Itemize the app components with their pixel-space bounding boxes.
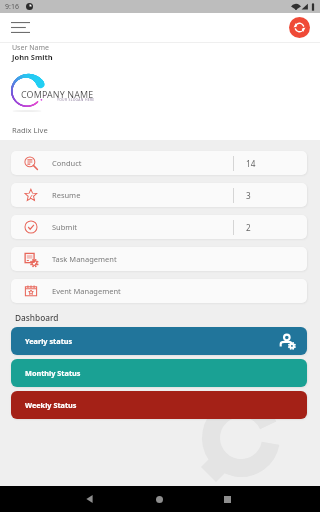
staticText: John Smith [12,52,53,62]
button[interactable]: Event Management [11,279,307,303]
button[interactable]: Refresh [289,17,310,38]
button[interactable]: Back [74,486,104,512]
button[interactable]: Yearly status [11,327,307,355]
button[interactable]: Task Management [11,247,307,271]
staticText: 9:16 [5,2,19,12]
staticText: Event Management [52,286,121,296]
staticText: Resume [52,190,81,200]
button[interactable]: Submit [11,215,307,239]
staticText: COMPANY NAME [21,88,94,100]
staticText: Weekly Status [25,400,77,410]
button[interactable]: Conduct [11,151,307,175]
staticText: Yearly status [25,336,73,346]
staticText: 3 [246,190,251,201]
button[interactable]: Recents [212,486,242,512]
staticText: YOUR SLOGAN HERE [57,97,95,102]
button[interactable]: Menu [5,16,35,38]
button[interactable]: Resume [11,183,307,207]
staticText: Submit [52,222,78,232]
staticText: User Name [12,43,49,53]
staticText: Task Management [52,254,117,264]
button[interactable]: Weekly Status [11,391,307,419]
button[interactable]: Home [144,486,174,512]
staticText: Monthly Status [25,368,81,378]
staticText: Conduct [52,158,82,168]
button[interactable]: Monthly Status [11,359,307,387]
staticText: Dashboard [15,312,59,323]
staticText: 2 [246,222,251,233]
staticText: 14 [246,158,256,169]
staticText: Radix Live [12,125,48,135]
